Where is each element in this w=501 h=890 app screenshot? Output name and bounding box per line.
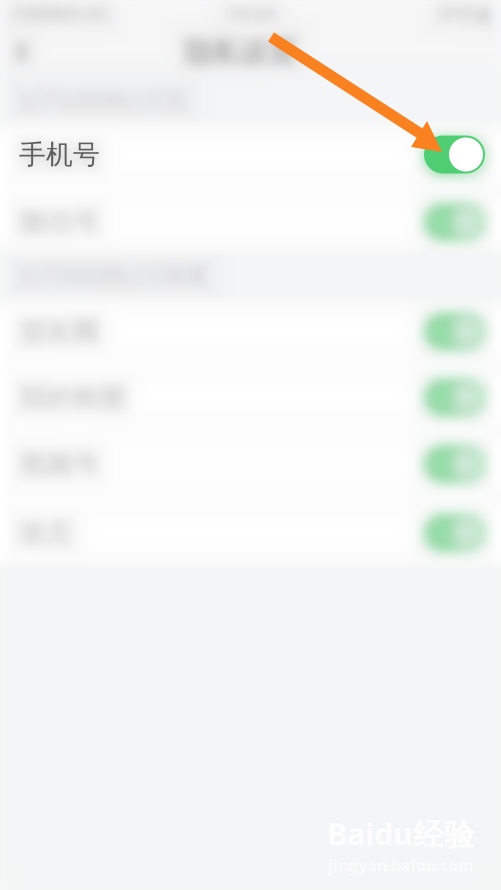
staticText: 隐私设置 xyxy=(185,35,297,69)
staticText: 状态 xyxy=(19,517,73,549)
button[interactable]: 视频号 xyxy=(0,431,501,497)
staticText: 中国移动 4G xyxy=(12,1,108,24)
staticText: 视频号 xyxy=(19,448,100,480)
staticText: 我的相册 xyxy=(19,381,127,414)
button[interactable]: 微信号 xyxy=(0,191,501,253)
button[interactable]: 手机号 xyxy=(0,123,501,190)
staticText: 手机号 xyxy=(19,138,100,171)
button[interactable]: 手机号 xyxy=(0,123,501,186)
staticText: 朋友圈 xyxy=(19,315,100,348)
button[interactable]: 朋友圈 xyxy=(0,299,501,364)
button[interactable]: 状态 xyxy=(0,498,501,568)
button[interactable]: 我的相册 xyxy=(0,365,501,430)
staticText: Baidu经验 xyxy=(327,813,475,854)
staticText: 手机号 xyxy=(19,140,100,173)
staticText: 10:24 xyxy=(226,1,275,25)
staticText: 微信号 xyxy=(19,206,100,238)
staticText: 87% ▮ xyxy=(440,1,489,24)
